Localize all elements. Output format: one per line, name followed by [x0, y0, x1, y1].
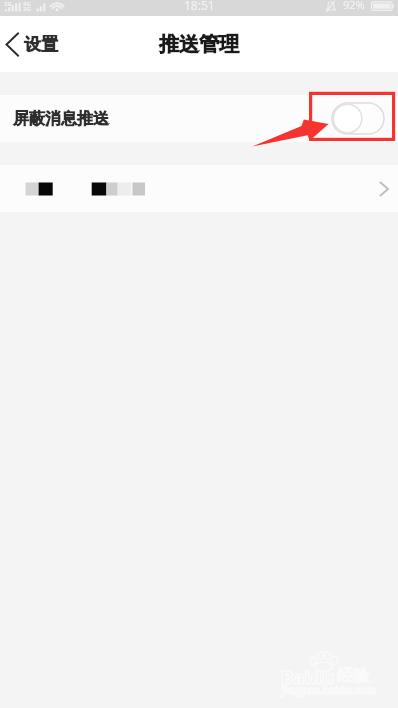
- staticText: 18:51: [184, 0, 215, 13]
- button[interactable]: Back to Settings: [0, 32, 68, 57]
- button[interactable]: [0, 165, 398, 212]
- staticText: 4G: [23, 0, 31, 8]
- button[interactable]: Toggle block message push: [332, 103, 384, 134]
- staticText: 设置: [24, 34, 58, 55]
- button[interactable]: 屏蔽消息推送: [0, 95, 398, 142]
- staticText: 屏蔽消息推送: [13, 109, 109, 129]
- staticText: 推送管理: [159, 32, 239, 57]
- staticText: 2G: [4, 0, 12, 8]
- staticText: 2G: [23, 5, 31, 13]
- staticText: 92%: [343, 0, 365, 12]
